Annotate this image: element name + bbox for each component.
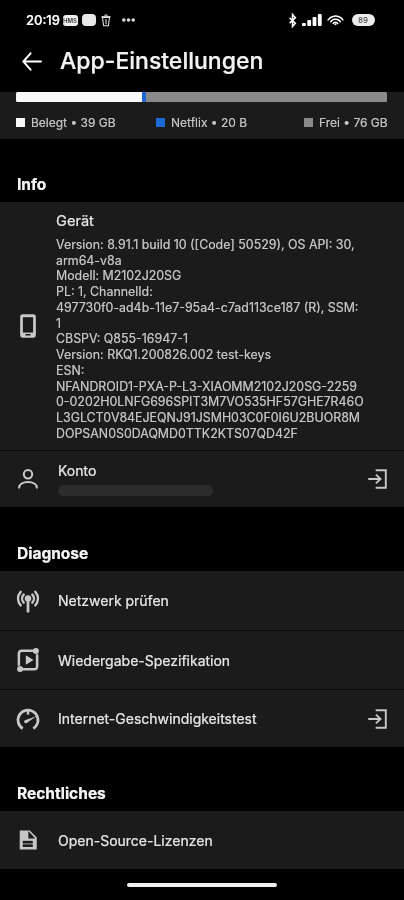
button[interactable]: Wiedergabe-Spezifikation bbox=[0, 631, 404, 689]
staticText: ESN: bbox=[56, 363, 85, 378]
staticText: PL: 1, ChannelId: bbox=[56, 284, 153, 299]
staticText: Frei • 76 GB bbox=[319, 115, 388, 130]
button[interactable]: Zurück bbox=[12, 41, 52, 81]
staticText: Gerät bbox=[56, 212, 94, 230]
staticText: 1 bbox=[56, 316, 62, 331]
other: Öffnen bbox=[366, 708, 388, 730]
staticText: Belegt • 39 GB bbox=[31, 115, 116, 130]
staticText: Open-Source-Lizenzen bbox=[58, 832, 388, 849]
staticText: 20:19 bbox=[26, 12, 60, 28]
staticText: 89 bbox=[358, 15, 369, 25]
staticText: Netzwerk prüfen bbox=[58, 592, 388, 609]
staticText: Version: 8.91.1 build 10 ([Code] 50529),… bbox=[56, 237, 355, 252]
button[interactable]: Gerät bbox=[0, 202, 404, 450]
other: Anmelden bbox=[366, 468, 388, 490]
staticText: L3GLCT0V84EJEQNJ91JSMH03C0F0I6U2BUOR8M bbox=[56, 410, 360, 425]
button[interactable]: Open-Source-Lizenzen bbox=[0, 811, 404, 869]
staticText: Wiedergabe-Spezifikation bbox=[58, 652, 388, 669]
staticText: Internet-Geschwindigkeitstest bbox=[58, 710, 366, 727]
staticText: DOPSAN0S0DAQMD0TTK2KTS07QD42F bbox=[56, 426, 298, 441]
staticText: Version: RKQ1.200826.002 test-keys bbox=[56, 347, 271, 362]
button[interactable]: Konto bbox=[0, 451, 404, 507]
staticText: NFANDROID1-PXA-P-L3-XIAOMM2102J20SG-2259 bbox=[56, 379, 357, 394]
staticText: 497730f0-ad4b-11e7-95a4-c7ad113ce187 (R)… bbox=[56, 300, 359, 315]
staticText: Diagnose bbox=[17, 544, 89, 563]
staticText: Konto bbox=[58, 462, 97, 479]
staticText: App-Einstellungen bbox=[60, 47, 264, 75]
button[interactable]: Netzwerk prüfen bbox=[0, 571, 404, 630]
staticText: Info bbox=[17, 175, 47, 194]
staticText: Netflix • 20 B bbox=[171, 115, 248, 130]
staticText: HMS bbox=[63, 17, 78, 24]
staticText: CBSPV: Q855-16947-1 bbox=[56, 331, 188, 346]
button[interactable]: Internet-Geschwindigkeitstest bbox=[0, 690, 404, 747]
staticText: Rechtliches bbox=[17, 784, 106, 803]
staticText: arm64-v8a bbox=[56, 253, 122, 268]
staticText: Modell: M2102J20SG bbox=[56, 268, 182, 283]
staticText: 0-0202H0LNFG696SPIT3M7VO535HF57GHE7R46O bbox=[56, 394, 364, 409]
